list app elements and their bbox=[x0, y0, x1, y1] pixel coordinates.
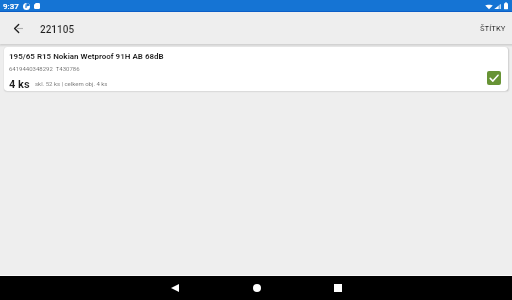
button[interactable]: Recent apps bbox=[297, 276, 378, 300]
button[interactable]: Confirmed bbox=[487, 71, 501, 85]
button[interactable]: Home bbox=[216, 276, 297, 300]
staticText: 6419440348292 T430786 bbox=[9, 65, 80, 72]
staticText: ŠTÍTKY bbox=[480, 24, 506, 33]
staticText: 195/65 R15 Nokian Wetproof 91H AB 68dB bbox=[9, 52, 164, 61]
button[interactable]: 195/65 R15 Nokian Wetproof 91H AB 68dB bbox=[4, 47, 508, 91]
button[interactable]: ŠTÍTKY bbox=[473, 13, 512, 43]
button[interactable]: Navigate up bbox=[0, 15, 36, 44]
staticText: skl. 52 ks | celkem obj. 4 ks bbox=[35, 80, 108, 87]
staticText: 4 ks bbox=[9, 78, 30, 91]
staticText: 221105 bbox=[40, 24, 75, 36]
staticText: 9:37 bbox=[3, 2, 19, 11]
button[interactable]: Back bbox=[134, 276, 216, 300]
